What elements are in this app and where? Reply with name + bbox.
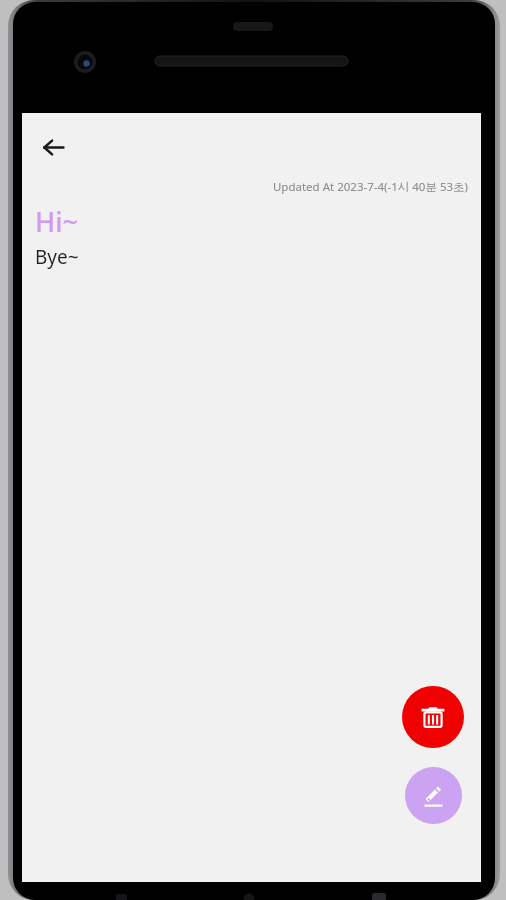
- button[interactable]: Edit: [405, 767, 462, 824]
- button[interactable]: Delete: [402, 686, 464, 748]
- button[interactable]: Back: [31, 125, 75, 169]
- staticText: Updated At 2023-7-4(-1시 40분 53초): [22, 179, 468, 195]
- staticText: Bye~: [35, 244, 79, 270]
- staticText: Hi~: [35, 203, 78, 240]
